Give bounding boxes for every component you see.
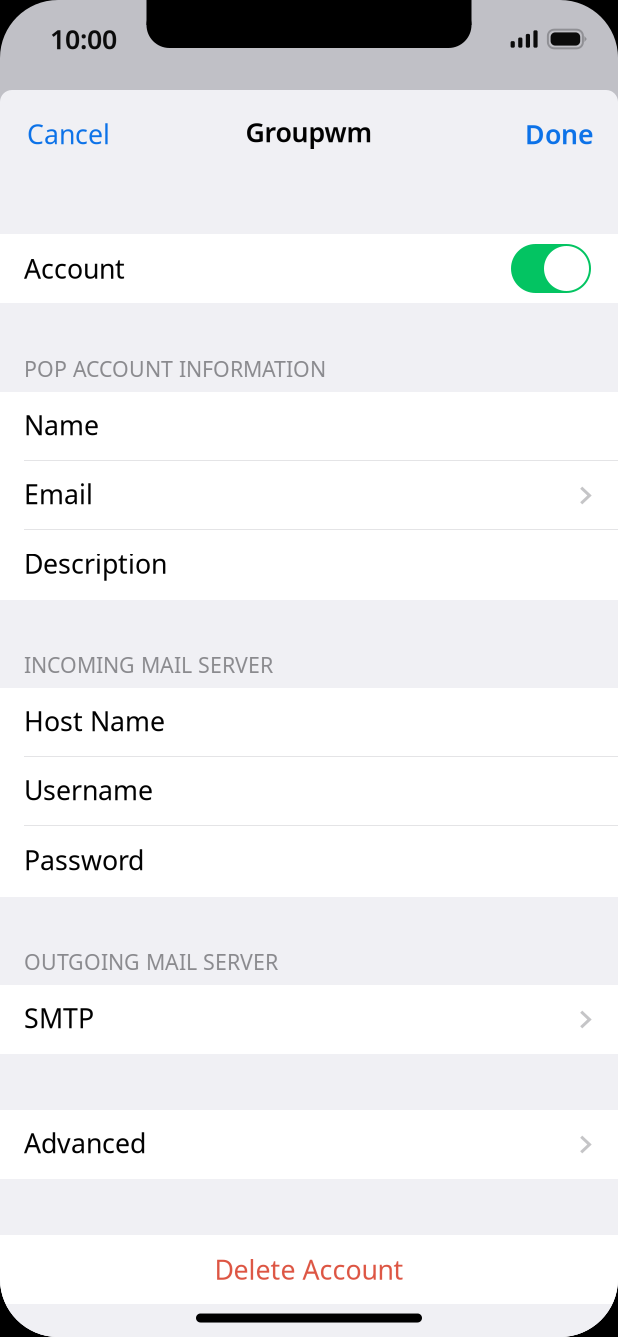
button[interactable]: Advanced (0, 1110, 618, 1179)
button[interactable]: Username (0, 757, 618, 826)
button[interactable]: Password (0, 826, 618, 897)
staticText: POP ACCOUNT INFORMATION (24, 355, 326, 383)
staticText: 10:00 (50, 21, 117, 57)
button[interactable]: SMTP (0, 985, 618, 1054)
staticText: Name (24, 407, 99, 443)
staticText: Delete Account (214, 1252, 403, 1287)
staticText: Host Name (24, 703, 165, 739)
button[interactable]: Name (0, 392, 618, 461)
staticText: Groupwm (245, 114, 372, 150)
staticText: INCOMING MAIL SERVER (24, 651, 273, 679)
staticText: Cancel (27, 116, 110, 152)
staticText: OUTGOING MAIL SERVER (24, 948, 278, 976)
button[interactable]: Host Name (0, 688, 618, 757)
staticText: Advanced (24, 1125, 146, 1161)
staticText: Password (24, 842, 144, 878)
staticText: Account (24, 251, 125, 286)
button[interactable]: Done (498, 90, 618, 178)
button[interactable]: Cancel (0, 90, 137, 178)
staticText: Done (525, 116, 594, 152)
staticText: SMTP (24, 1000, 94, 1036)
button[interactable]: Description (0, 530, 618, 600)
staticText: Description (24, 546, 167, 581)
staticText: Username (24, 772, 153, 808)
button[interactable]: Account on (511, 244, 591, 293)
staticText: Email (24, 476, 93, 512)
button[interactable]: Delete Account (0, 1235, 618, 1304)
button[interactable]: Email (0, 461, 618, 530)
